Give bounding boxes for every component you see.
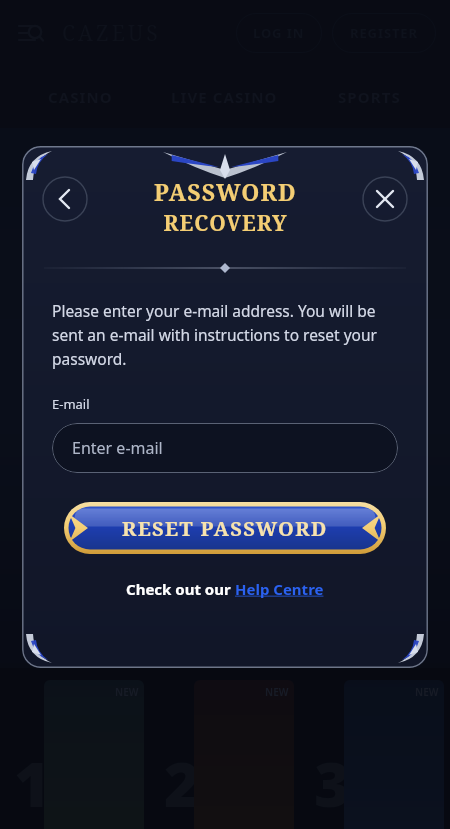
staticText: NEW [265, 685, 289, 699]
staticText: Check out our [126, 579, 235, 599]
button[interactable]: Help Centre [235, 579, 324, 599]
staticText: RESET PASSWORD [122, 515, 328, 542]
staticText: E-mail [52, 395, 90, 413]
staticText: 2 [164, 741, 201, 825]
staticText: RECOVERY [163, 209, 288, 238]
staticText: NEW [115, 685, 139, 699]
staticText: NEW [415, 685, 439, 699]
staticText: PASSWORD [154, 176, 297, 207]
staticText: 1 [14, 741, 51, 825]
staticText: Help Centre [235, 579, 324, 599]
button[interactable]: Close [362, 176, 408, 222]
button[interactable]: Back [42, 176, 88, 222]
staticText: Please enter your e-mail address. You wi… [52, 300, 398, 369]
staticText: CASINO [48, 87, 113, 107]
staticText: Enter e-mail [72, 437, 163, 459]
button[interactable]: Enter e-mail [52, 423, 398, 473]
staticText: 3 [314, 741, 351, 825]
staticText: SPORTS [338, 87, 401, 107]
button[interactable]: RESET PASSWORD [50, 497, 400, 559]
staticText: LIVE CASINO [171, 87, 278, 107]
